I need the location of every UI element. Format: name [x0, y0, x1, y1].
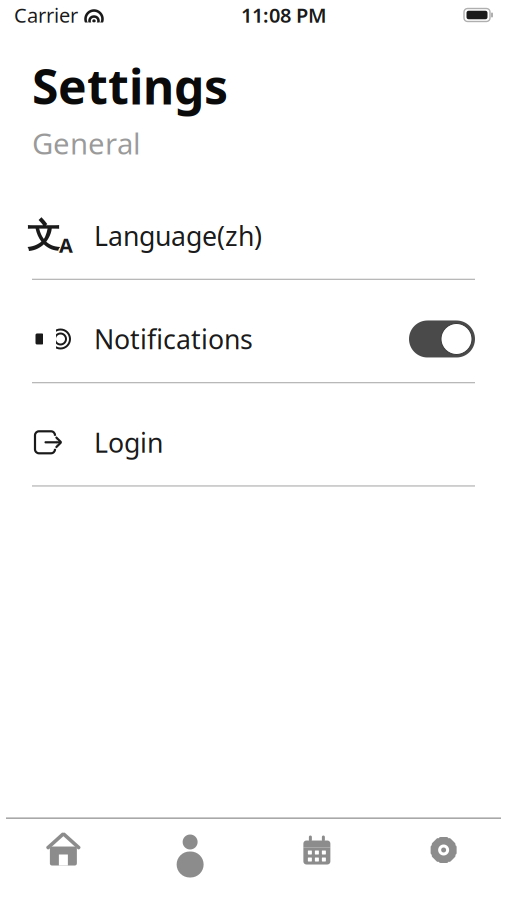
staticText: Carrier — [14, 2, 78, 28]
button[interactable]: Notifications — [0, 296, 507, 399]
button[interactable]: Login — [0, 399, 507, 503]
button[interactable]: Settings — [380, 820, 507, 880]
staticText: A — [59, 232, 73, 258]
button[interactable]: Profile — [127, 820, 254, 880]
staticText: Login — [94, 425, 163, 460]
button[interactable]: Home — [0, 820, 127, 880]
staticText: Notifications — [94, 321, 253, 357]
staticText: 11:08 PM — [241, 2, 327, 28]
staticText: 文 — [27, 215, 60, 256]
staticText: General — [32, 124, 141, 163]
button[interactable]: 文 — [0, 193, 507, 296]
staticText: Language(zh) — [94, 218, 262, 253]
staticText: Settings — [32, 54, 228, 118]
button[interactable]: Calendar — [253, 820, 380, 880]
